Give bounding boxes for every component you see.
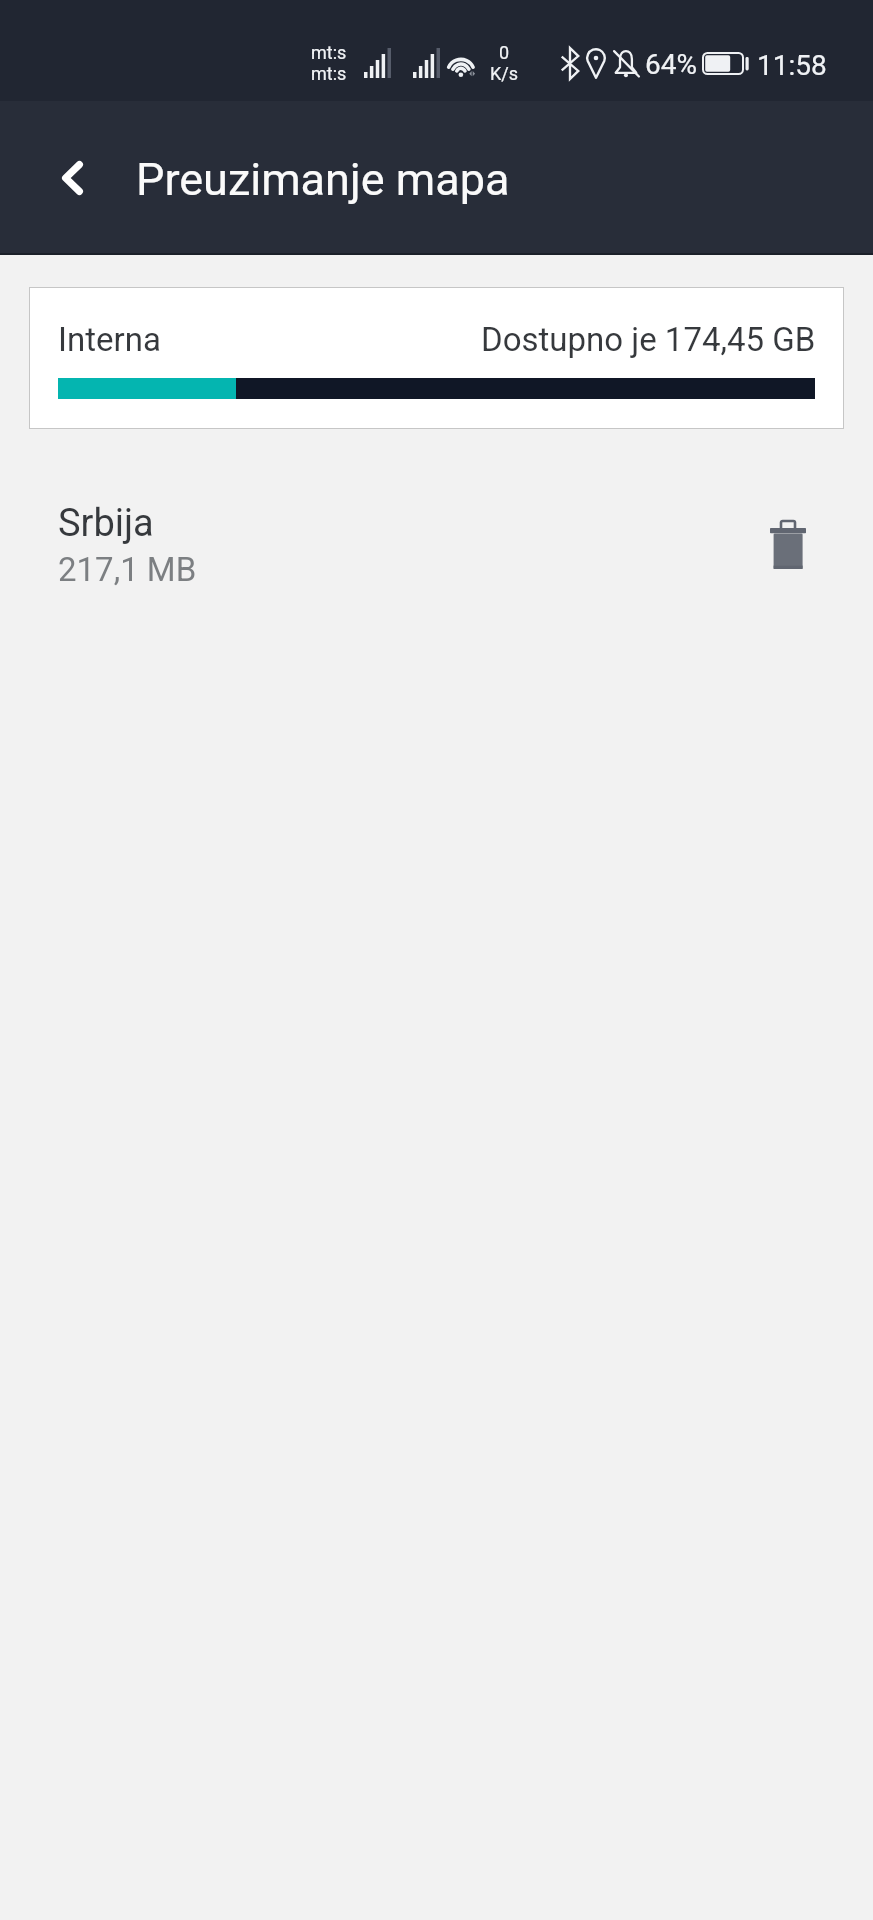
staticText: 11:58 <box>757 49 827 82</box>
staticText: mt:s <box>311 42 347 63</box>
button[interactable]: Interna <box>29 287 844 429</box>
button[interactable]: Back <box>34 139 111 216</box>
staticText: 64% <box>645 48 697 81</box>
staticText: Preuzimanje mapa <box>136 153 510 206</box>
staticText: Srbija <box>58 501 154 546</box>
staticText: Interna <box>58 320 161 359</box>
staticText: 0 <box>499 42 510 63</box>
staticText: 217,1 MB <box>58 550 197 589</box>
button[interactable]: Delete <box>753 510 823 580</box>
staticText: K/s <box>490 63 519 84</box>
button[interactable]: Srbija <box>0 470 873 610</box>
staticText: mt:s <box>311 63 347 84</box>
staticText: Dostupno je 174,45 GB <box>481 320 816 359</box>
